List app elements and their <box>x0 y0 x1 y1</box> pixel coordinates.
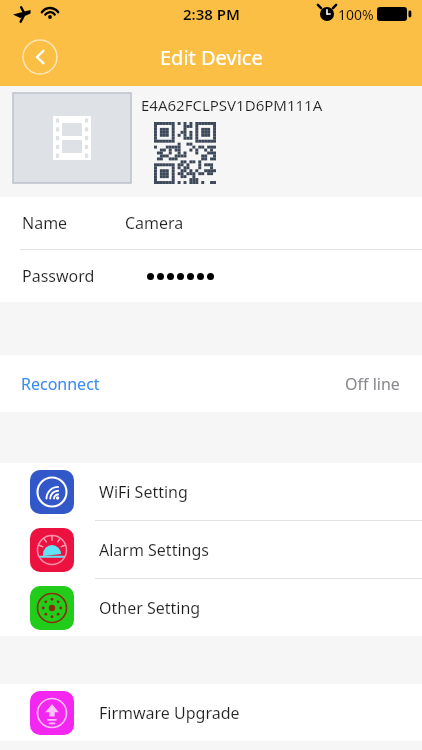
button[interactable]: Back <box>22 39 58 75</box>
staticText: Name <box>22 212 68 234</box>
button[interactable]: Other Setting <box>0 579 422 636</box>
staticText: Edit Device <box>160 44 263 71</box>
button[interactable]: Reconnect <box>0 355 422 412</box>
staticText: Off line <box>345 373 400 395</box>
button[interactable]: Alarm Settings <box>0 521 422 578</box>
button[interactable]: Name <box>0 197 422 249</box>
staticText: 2:38 PM <box>183 4 240 24</box>
button[interactable]: Password <box>0 250 422 302</box>
staticText: Firmware Upgrade <box>99 702 240 724</box>
staticText: Reconnect <box>21 373 100 395</box>
staticText: Camera <box>125 212 184 234</box>
staticText: Password <box>22 265 95 287</box>
staticText: WiFi Setting <box>99 481 188 503</box>
staticText: 100% <box>338 5 374 24</box>
button[interactable]: Firmware Upgrade <box>0 684 422 741</box>
button[interactable]: WiFi Setting <box>0 463 422 520</box>
staticText: Alarm Settings <box>99 539 209 561</box>
staticText: E4A62FCLPSV1D6PM111A <box>141 95 323 115</box>
staticText: Other Setting <box>99 597 201 619</box>
